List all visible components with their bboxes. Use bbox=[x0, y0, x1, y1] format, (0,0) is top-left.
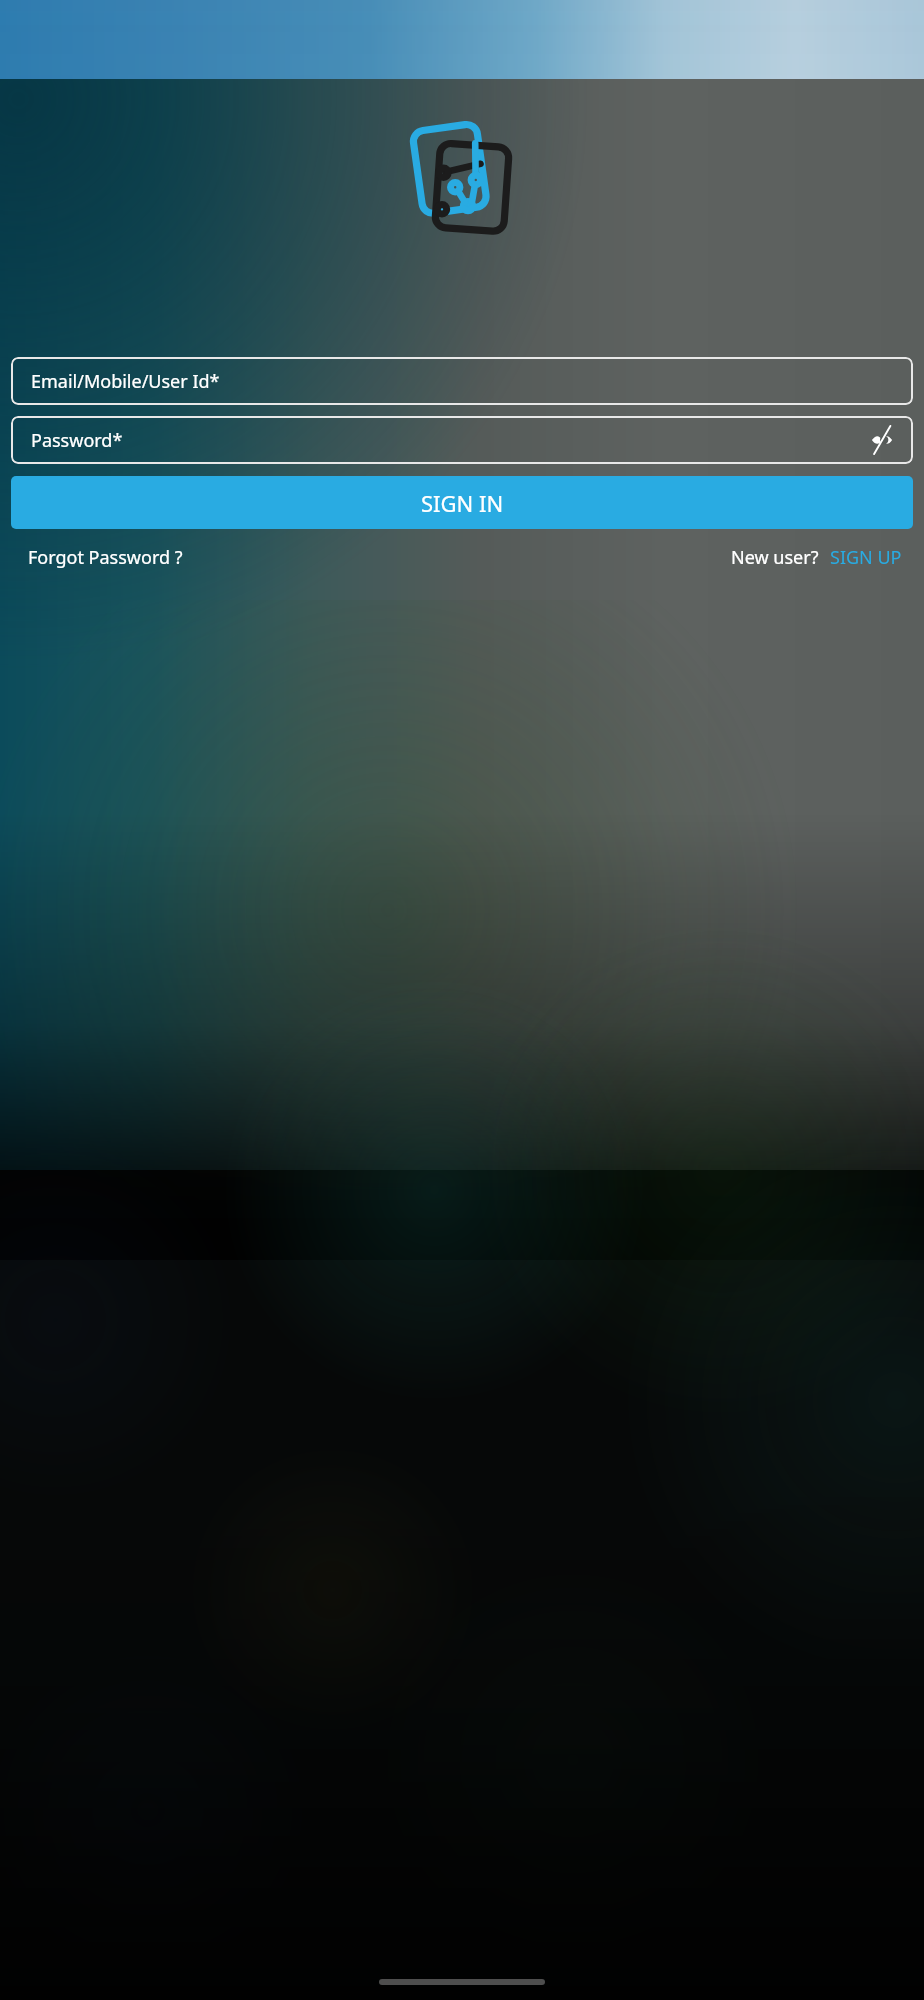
button[interactable]: Forgot Password ? bbox=[12, 539, 199, 576]
button[interactable]: SIGN UP bbox=[819, 539, 912, 576]
staticText: SIGN IN bbox=[421, 488, 504, 518]
button[interactable]: Password* bbox=[11, 416, 913, 464]
staticText: Forgot Password ? bbox=[28, 545, 183, 570]
button[interactable]: SIGN IN bbox=[11, 476, 913, 529]
staticText: SIGN UP bbox=[830, 545, 902, 570]
staticText: Email/Mobile/User Id* bbox=[31, 369, 220, 394]
button[interactable]: Show password bbox=[865, 423, 899, 457]
button[interactable]: Email/Mobile/User Id* bbox=[11, 357, 913, 405]
staticText: New user? bbox=[731, 545, 819, 570]
staticText: Password* bbox=[31, 428, 123, 453]
